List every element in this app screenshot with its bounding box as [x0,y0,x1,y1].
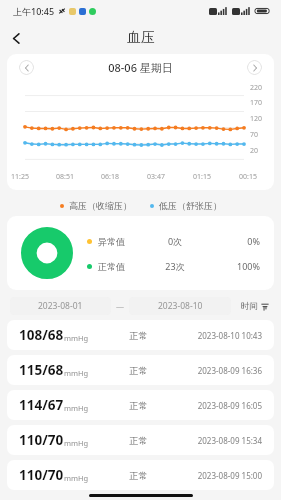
button[interactable]: Back [0,22,32,54]
button[interactable]: 110/70 [7,460,274,490]
button[interactable]: 108/68 [7,320,274,350]
staticText: 115/68 [19,361,64,379]
staticText: 114/67 [19,396,64,414]
staticText: 0次 [155,235,195,247]
staticText: 2023-08-10 [158,300,203,312]
staticText: 上午10:45 [13,5,55,17]
staticText: mmHg [64,368,89,378]
staticText: mmHg [64,473,89,483]
staticText: 00:15 [239,172,272,182]
staticText: 2023-08-10 10:43 [163,330,262,341]
staticText: 正常 [114,435,163,446]
staticText: 正常值 [98,261,125,272]
staticText: 2023-08-09 16:05 [163,400,262,411]
staticText: 100% [226,260,260,272]
staticText: 08:51 [56,172,101,182]
staticText: mmHg [64,333,89,343]
staticText: 20 [250,146,259,156]
staticText: 2023-08-09 15:34 [163,435,262,446]
staticText: 220 [250,83,263,93]
staticText: 110/70 [19,466,64,484]
staticText: 70 [250,130,259,140]
staticText: mmHg [64,438,89,448]
staticText: mmHg [64,403,89,413]
staticText: — [116,301,124,312]
staticText: 06:18 [101,172,147,182]
button[interactable]: 2023-08-01 [10,297,111,315]
staticText: 正常 [114,470,163,481]
staticText: 23次 [155,260,195,272]
staticText: 2023-08-01 [38,300,83,312]
staticText: 异常值 [98,236,125,247]
button[interactable]: 110/70 [7,425,274,455]
button[interactable]: 2023-08-10 [129,297,231,315]
staticText: 0% [226,235,260,247]
staticText: 110/70 [19,431,64,449]
staticText: 血压 [127,29,155,47]
button[interactable]: 时间 [239,298,271,315]
staticText: 正常 [114,330,163,341]
staticText: 正常 [114,365,163,376]
staticText: 170 [250,98,263,108]
staticText: 低压（舒张压） [159,200,222,211]
button[interactable]: Next day [247,60,262,75]
staticText: 01:15 [193,172,239,182]
staticText: 2023-08-09 16:36 [163,365,262,376]
other: Sort [261,303,269,311]
staticText: 03:47 [147,172,193,182]
staticText: 2023-08-09 15:00 [163,470,262,481]
staticText: 120 [250,114,263,124]
staticText: 11:25 [11,172,56,182]
button[interactable]: 114/67 [7,390,274,420]
staticText: 108/68 [19,326,64,344]
staticText: 高压（收缩压） [69,200,132,211]
button[interactable]: 115/68 [7,355,274,385]
staticText: 08-06 星期日 [34,60,247,75]
staticText: 正常 [114,400,163,411]
staticText: 时间 [241,301,258,312]
button[interactable]: Previous day [19,60,34,75]
